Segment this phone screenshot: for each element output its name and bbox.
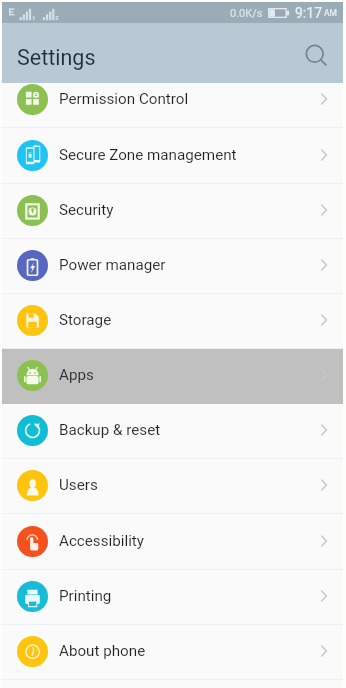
staticText: Printing [59, 587, 112, 605]
button[interactable]: Printing [2, 570, 343, 625]
button[interactable]: Backup & reset [2, 404, 343, 459]
button[interactable]: Users [2, 459, 343, 514]
button[interactable]: Power manager [2, 239, 343, 294]
button[interactable]: Storage [2, 294, 343, 349]
button[interactable]: Permission Control [2, 73, 343, 128]
staticText: Apps [59, 366, 94, 384]
staticText: 0.0K/s [230, 7, 263, 20]
button[interactable]: Search [297, 37, 333, 73]
button[interactable]: Secure Zone management [2, 129, 343, 184]
staticText: AM [324, 8, 337, 18]
button[interactable]: Accessibility [2, 515, 343, 570]
staticText: Users [59, 476, 98, 494]
button[interactable]: Security [2, 184, 343, 239]
button[interactable]: Apps [2, 349, 343, 404]
staticText: Security [59, 201, 114, 219]
staticText: About phone [59, 642, 146, 660]
staticText: Storage [59, 311, 112, 329]
staticText: Permission Control [59, 90, 189, 108]
staticText: Backup & reset [59, 421, 161, 439]
staticText: Secure Zone management [59, 146, 237, 164]
button[interactable]: About phone [2, 625, 343, 680]
staticText: Settings [17, 45, 96, 70]
staticText: Power manager [59, 256, 166, 274]
staticText: 9:17 [295, 5, 322, 21]
staticText: Accessibility [59, 532, 144, 550]
